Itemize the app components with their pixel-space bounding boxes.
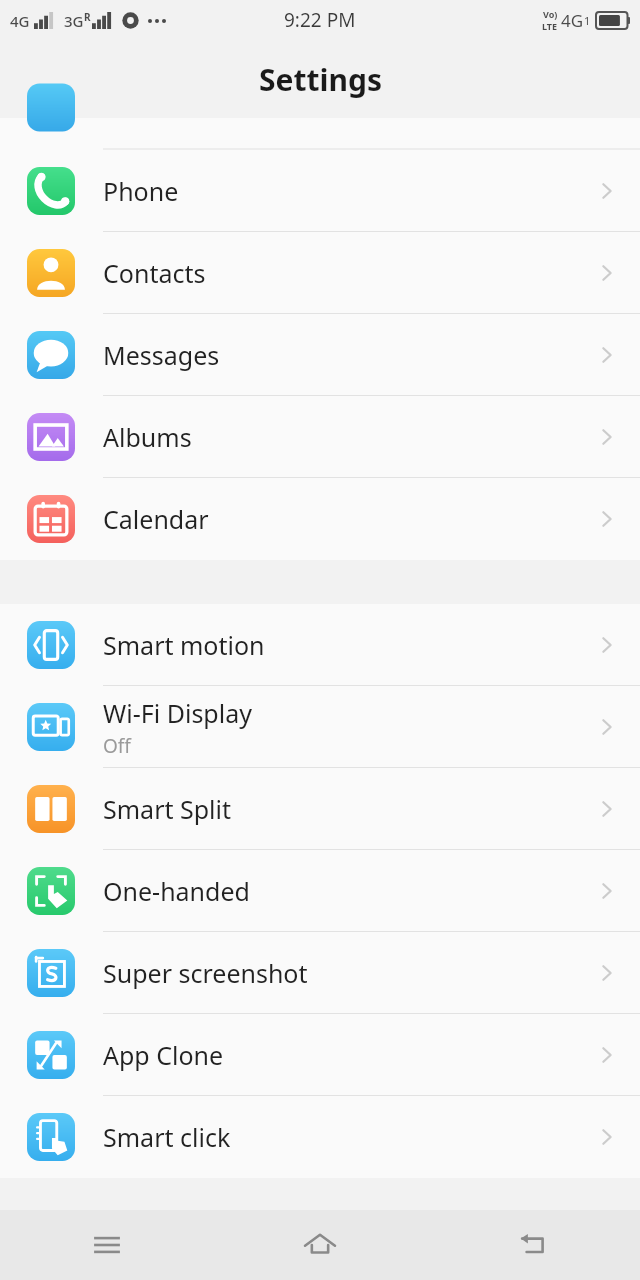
staticText: R <box>84 10 91 24</box>
staticText: Off <box>103 733 131 759</box>
button[interactable]: Albums <box>0 396 640 478</box>
staticText: Contacts <box>103 256 206 290</box>
staticText: Vo) <box>543 8 558 20</box>
button[interactable]: Smart motion <box>0 604 640 686</box>
staticText: LTE <box>542 20 558 32</box>
staticText: One-handed <box>103 874 250 908</box>
staticText: Wi-Fi Display <box>103 696 252 730</box>
staticText: 9:22 PM <box>284 7 356 33</box>
button[interactable]: Phone <box>0 150 640 232</box>
staticText: Phone <box>103 174 179 208</box>
button[interactable]: Super screenshot <box>0 932 640 1014</box>
staticText: Calendar <box>103 502 209 536</box>
staticText: Albums <box>103 420 192 454</box>
button[interactable]: Calendar <box>0 478 640 560</box>
staticText: Settings <box>259 59 382 100</box>
staticText: Super screenshot <box>103 956 308 990</box>
button[interactable]: Smart Split <box>0 768 640 850</box>
button[interactable]: Home <box>280 1210 360 1280</box>
button[interactable]: One-handed <box>0 850 640 932</box>
button[interactable]: Wi-Fi Display <box>0 686 640 768</box>
staticText: Smart Split <box>103 792 232 826</box>
staticText: Smart click <box>103 1120 231 1154</box>
staticText: Smart motion <box>103 628 265 662</box>
button[interactable]: Contacts <box>0 232 640 314</box>
staticText: 3G <box>64 11 84 31</box>
staticText: Messages <box>103 338 220 372</box>
button[interactable]: Recent apps <box>67 1210 147 1280</box>
button[interactable]: App Clone <box>0 1014 640 1096</box>
button[interactable]: Messages <box>0 314 640 396</box>
button[interactable]: Smart click <box>0 1096 640 1178</box>
staticText: 1 <box>584 13 591 28</box>
staticText: 4G <box>10 11 30 31</box>
staticText: App Clone <box>103 1038 224 1072</box>
staticText: 4G <box>561 9 584 32</box>
button[interactable]: Back <box>493 1210 573 1280</box>
